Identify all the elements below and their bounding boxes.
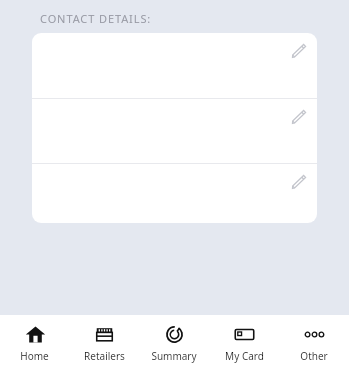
staticText: Summary <box>151 349 197 363</box>
button[interactable]: Edit <box>285 169 311 195</box>
staticText: My Card <box>225 349 264 363</box>
button[interactable]: Home <box>0 315 69 372</box>
button[interactable]: My Card <box>209 315 279 372</box>
staticText: Other <box>300 349 328 363</box>
button[interactable]: Retailers <box>69 315 139 372</box>
button[interactable]: Edit <box>285 104 311 130</box>
staticText: CONTACT DETAILS: <box>40 11 152 26</box>
button[interactable]: Summary <box>139 315 209 372</box>
button[interactable]: Edit <box>285 38 311 64</box>
staticText: Retailers <box>84 349 125 363</box>
button[interactable]: Other <box>279 315 349 372</box>
button[interactable]: Edit <box>32 164 317 223</box>
staticText: Home <box>20 349 49 363</box>
button[interactable]: Edit <box>32 33 317 98</box>
